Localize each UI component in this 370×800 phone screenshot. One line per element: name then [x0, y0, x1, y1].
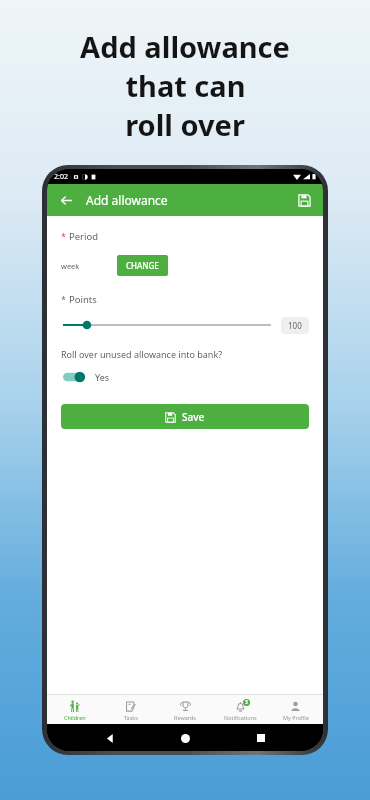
- button[interactable]: Back: [55, 189, 77, 211]
- staticText: Add allowance: [80, 27, 290, 66]
- staticText: Save: [182, 410, 205, 424]
- staticText: 100: [288, 320, 302, 331]
- button[interactable]: Save: [293, 189, 315, 211]
- staticText: Tasks: [124, 714, 138, 721]
- staticText: Children: [64, 714, 86, 721]
- button[interactable]: CHANGE: [117, 255, 168, 276]
- button[interactable]: Save: [61, 404, 309, 429]
- button[interactable]: Points slider: [61, 316, 273, 334]
- staticText: 3: [245, 699, 248, 706]
- staticText: week: [61, 261, 80, 271]
- button[interactable]: My Profile: [268, 695, 323, 724]
- button[interactable]: Yes: [61, 370, 110, 384]
- button[interactable]: Recent apps: [248, 725, 274, 751]
- button[interactable]: Tasks: [103, 695, 158, 724]
- staticText: Add allowance: [86, 192, 168, 208]
- staticText: Period: [69, 230, 99, 243]
- staticText: that can: [125, 66, 246, 105]
- staticText: CHANGE: [126, 260, 159, 271]
- button[interactable]: 3: [213, 695, 268, 724]
- staticText: Points: [69, 293, 97, 306]
- staticText: Rewards: [174, 714, 197, 721]
- staticText: My Profile: [283, 714, 309, 721]
- button[interactable]: Children: [47, 695, 103, 724]
- button[interactable]: Rewards: [158, 695, 213, 724]
- staticText: 2:02: [54, 172, 68, 182]
- staticText: Notifications: [224, 714, 257, 721]
- staticText: Roll over unused allowance into bank?: [61, 348, 223, 360]
- staticText: roll over: [125, 105, 245, 144]
- staticText: *: [61, 293, 66, 305]
- staticText: Yes: [95, 371, 110, 383]
- button[interactable]: Back: [97, 725, 123, 751]
- staticText: *: [61, 230, 66, 242]
- button[interactable]: Home: [172, 725, 198, 751]
